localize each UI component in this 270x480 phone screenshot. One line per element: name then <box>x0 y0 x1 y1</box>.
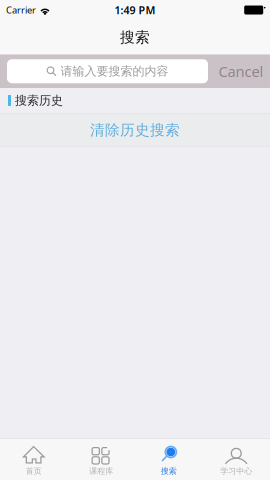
staticText: Carrier <box>6 4 36 16</box>
staticText: 搜索 <box>161 466 177 476</box>
button[interactable]: 搜索 <box>135 439 202 480</box>
staticText: 课程库 <box>89 466 113 476</box>
button[interactable]: Cancel <box>208 54 270 88</box>
button[interactable]: 清除历史搜索 <box>0 113 270 147</box>
staticText: 学习中心 <box>220 466 252 476</box>
staticText: 搜索历史 <box>15 93 63 108</box>
staticText: 清除历史搜索 <box>90 121 180 139</box>
staticText: 首页 <box>26 466 42 476</box>
staticText: 请输入要搜索的内容 <box>60 64 168 79</box>
button[interactable]: 学习中心 <box>202 439 270 480</box>
button[interactable]: 首页 <box>0 439 67 480</box>
staticText: 1:49 PM <box>114 3 155 17</box>
staticText: Cancel <box>218 61 263 81</box>
button[interactable]: 课程库 <box>67 439 135 480</box>
staticText: 搜索 <box>120 28 150 46</box>
